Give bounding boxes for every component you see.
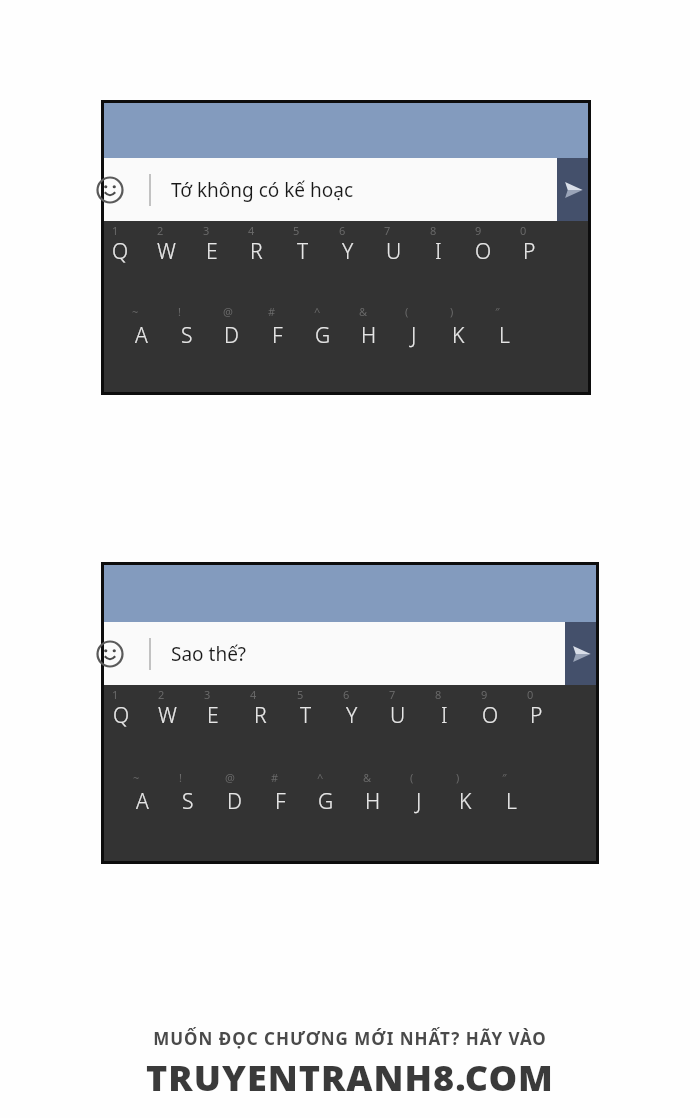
button[interactable]: O: [467, 698, 513, 732]
staticText: O: [475, 237, 492, 266]
staticText: ): [456, 770, 460, 785]
staticText: MUỐN ĐỌC CHƯƠNG MỚI NHẤT? HÃY VÀO: [153, 1027, 547, 1050]
staticText: I: [441, 701, 448, 730]
button[interactable]: R: [237, 698, 283, 732]
staticText: 2: [158, 687, 165, 702]
staticText: 4: [250, 687, 257, 702]
button[interactable]: Q: [98, 698, 144, 732]
button[interactable]: W: [144, 698, 190, 732]
staticText: 7: [384, 223, 391, 238]
staticText: S: [181, 321, 193, 350]
staticText: Q: [113, 701, 130, 730]
staticText: D: [227, 787, 242, 816]
staticText: G: [318, 787, 334, 816]
staticText: E: [206, 237, 218, 266]
staticText: 5: [297, 687, 304, 702]
button[interactable]: A: [119, 318, 164, 352]
button[interactable]: Emoji: [104, 622, 565, 685]
button[interactable]: Y: [329, 698, 375, 732]
button[interactable]: D: [209, 318, 254, 352]
staticText: 8: [435, 687, 442, 702]
button[interactable]: S: [164, 318, 209, 352]
button[interactable]: Q: [98, 234, 143, 268]
staticText: &: [359, 304, 368, 319]
button[interactable]: L: [482, 318, 527, 352]
staticText: F: [275, 787, 286, 816]
staticText: T: [297, 237, 309, 266]
button[interactable]: U: [371, 234, 416, 268]
button[interactable]: O: [461, 234, 506, 268]
staticText: Q: [112, 237, 129, 266]
staticText: Y: [342, 237, 354, 266]
staticText: @: [223, 304, 233, 319]
staticText: Sao thế?: [171, 641, 247, 667]
button[interactable]: E: [190, 698, 236, 732]
staticText: ^: [314, 304, 321, 319]
button[interactable]: T: [280, 234, 325, 268]
staticText: !: [178, 304, 181, 319]
staticText: G: [315, 321, 331, 350]
staticText: ^: [317, 770, 324, 785]
staticText: Y: [346, 701, 358, 730]
button[interactable]: H: [350, 784, 396, 818]
staticText: A: [136, 787, 149, 816]
staticText: #: [268, 304, 276, 319]
button[interactable]: Emoji: [95, 175, 125, 205]
staticText: W: [158, 701, 177, 730]
button[interactable]: R: [234, 234, 279, 268]
button[interactable]: Send: [565, 622, 596, 685]
button[interactable]: Emoji: [104, 158, 557, 221]
staticText: 0: [520, 223, 527, 238]
button[interactable]: U: [375, 698, 421, 732]
staticText: 2: [157, 223, 164, 238]
staticText: ″: [495, 304, 500, 319]
staticText: 6: [339, 223, 346, 238]
button[interactable]: D: [211, 784, 257, 818]
button[interactable]: L: [488, 784, 534, 818]
staticText: R: [254, 701, 267, 730]
button[interactable]: I: [416, 234, 461, 268]
button[interactable]: Send: [557, 158, 588, 221]
button[interactable]: J: [391, 318, 436, 352]
staticText: H: [361, 321, 377, 350]
staticText: 1: [112, 223, 119, 238]
staticText: S: [182, 787, 194, 816]
staticText: R: [250, 237, 263, 266]
button[interactable]: W: [144, 234, 189, 268]
button[interactable]: F: [255, 318, 300, 352]
staticText: F: [272, 321, 283, 350]
staticText: 8: [430, 223, 437, 238]
button[interactable]: Emoji: [95, 639, 125, 669]
staticText: P: [523, 237, 536, 266]
button[interactable]: A: [119, 784, 165, 818]
staticText: 4: [248, 223, 255, 238]
button[interactable]: Y: [325, 234, 370, 268]
button[interactable]: T: [283, 698, 329, 732]
button[interactable]: F: [257, 784, 303, 818]
staticText: #: [271, 770, 279, 785]
button[interactable]: I: [421, 698, 467, 732]
staticText: L: [499, 321, 510, 350]
staticText: ″: [502, 770, 507, 785]
button[interactable]: G: [303, 784, 349, 818]
button[interactable]: K: [436, 318, 481, 352]
button[interactable]: P: [507, 234, 552, 268]
staticText: U: [386, 237, 402, 266]
staticText: J: [411, 321, 417, 350]
staticText: U: [390, 701, 406, 730]
button[interactable]: G: [300, 318, 345, 352]
button[interactable]: H: [346, 318, 391, 352]
staticText: TRUYENTRANH8.COM: [146, 1053, 554, 1102]
staticText: @: [225, 770, 235, 785]
button[interactable]: P: [513, 698, 559, 732]
staticText: (: [405, 304, 409, 319]
button[interactable]: J: [396, 784, 442, 818]
button[interactable]: E: [189, 234, 234, 268]
button[interactable]: S: [165, 784, 211, 818]
staticText: W: [157, 237, 176, 266]
staticText: P: [530, 701, 543, 730]
staticText: 1: [112, 687, 119, 702]
button[interactable]: K: [442, 784, 488, 818]
